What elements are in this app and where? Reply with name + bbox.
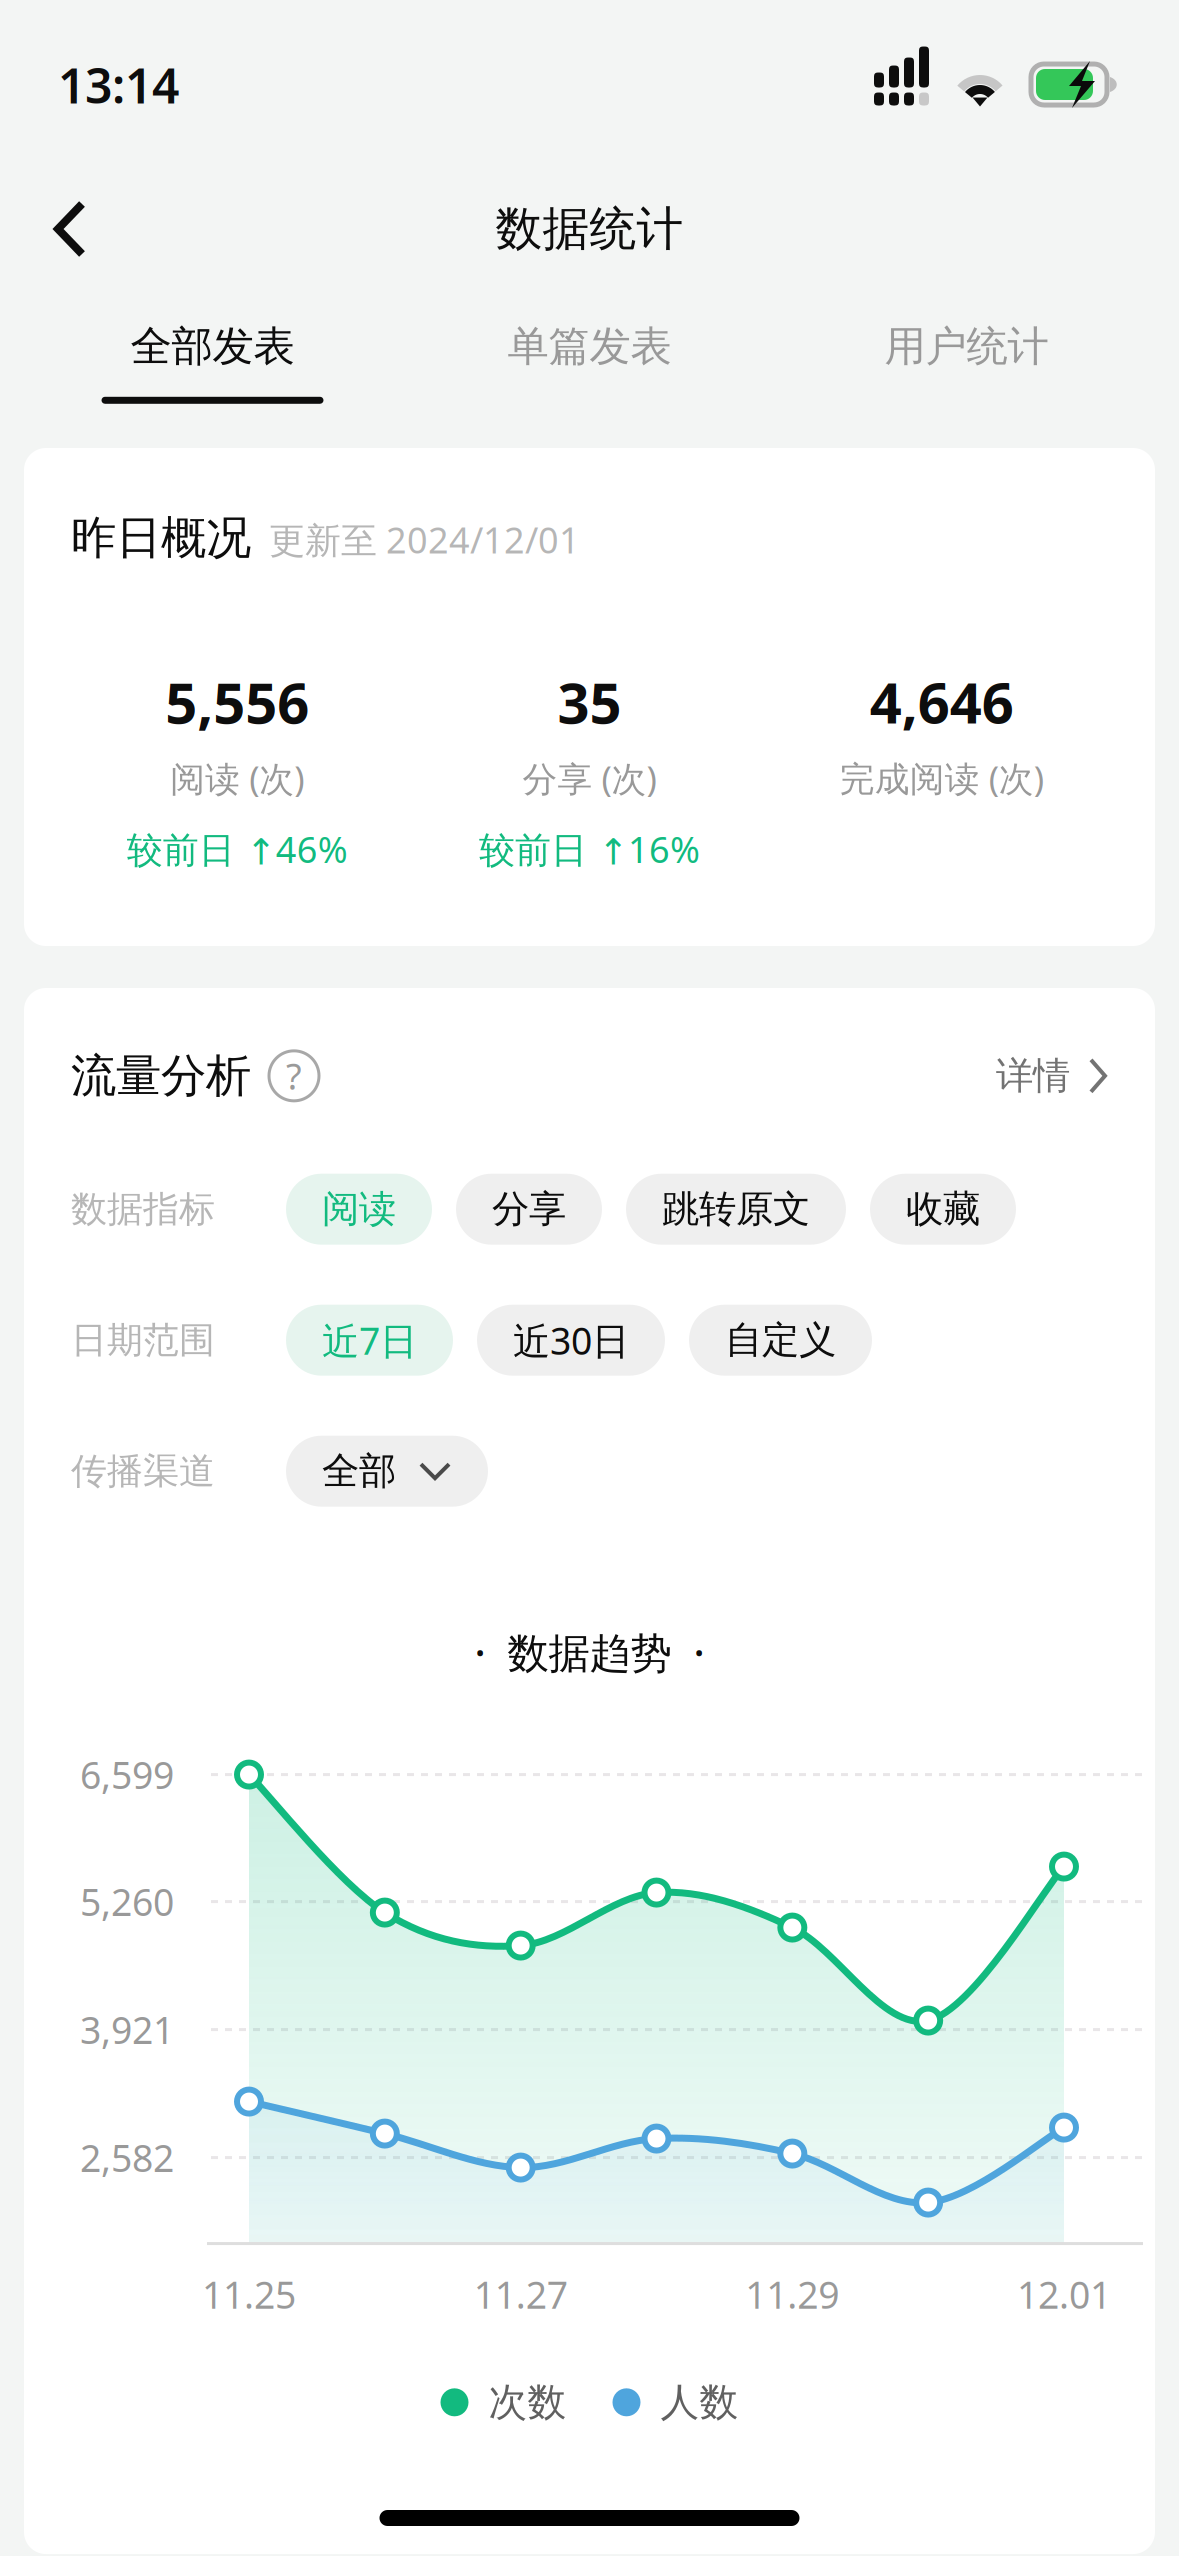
button[interactable]: 分享 xyxy=(456,1174,602,1245)
button[interactable]: 详情 xyxy=(996,1053,1108,1099)
staticText: 流量分析 xyxy=(71,1048,251,1104)
staticText: 完成阅读 (次) xyxy=(840,755,1044,801)
button[interactable]: 收藏 xyxy=(870,1174,1016,1245)
staticText: 数据指标 xyxy=(71,1187,215,1231)
staticText: 4,646 xyxy=(870,665,1014,739)
staticText: 分享 xyxy=(492,1186,566,1232)
staticText: 近7日 xyxy=(322,1315,417,1365)
button[interactable]: 全部 xyxy=(286,1436,488,1507)
staticText: 昨日概况 xyxy=(71,510,251,566)
staticText: 次数 xyxy=(488,2379,566,2426)
staticText: 分享 (次) xyxy=(522,755,656,801)
staticText: 用户统计 xyxy=(884,321,1048,372)
staticText: 6,599 xyxy=(80,1750,174,1799)
staticText: 阅读 xyxy=(322,1186,396,1232)
staticText: 全部发表 xyxy=(130,321,294,372)
staticText: ? xyxy=(286,1052,302,1100)
staticText: 2,582 xyxy=(80,2133,174,2182)
button[interactable]: 近7日 xyxy=(286,1305,453,1376)
staticText: 日期范围 xyxy=(71,1318,215,1362)
staticText: 近30日 xyxy=(513,1315,629,1365)
button[interactable]: 跳转原文 xyxy=(626,1174,846,1245)
staticText: 较前日 ↑16% xyxy=(479,825,700,873)
staticText: 传播渠道 xyxy=(71,1449,215,1493)
staticText: 数据统计 xyxy=(495,200,683,258)
staticText: · 数据趋势 · xyxy=(474,1625,704,1680)
button[interactable]: 自定义 xyxy=(689,1305,872,1376)
staticText: 单篇发表 xyxy=(507,321,671,372)
staticText: 35 xyxy=(557,665,621,739)
staticText: 详情 xyxy=(996,1053,1070,1099)
staticText: 全部 xyxy=(322,1448,396,1494)
staticText: 自定义 xyxy=(725,1317,836,1363)
button[interactable]: 阅读 xyxy=(286,1174,432,1245)
staticText: 3,921 xyxy=(80,2005,174,2054)
button[interactable]: 单篇发表 xyxy=(401,288,778,448)
staticText: 较前日 ↑46% xyxy=(127,825,348,873)
staticText: 收藏 xyxy=(906,1186,980,1232)
staticText: 阅读 (次) xyxy=(170,755,304,801)
button[interactable]: 全部发表 xyxy=(24,288,401,448)
staticText: 12.01 xyxy=(1017,2270,1111,2319)
staticText: 更新至 2024/12/01 xyxy=(269,516,580,563)
button[interactable]: Back xyxy=(22,174,118,284)
staticText: 人数 xyxy=(660,2379,738,2426)
staticText: 13:14 xyxy=(58,53,179,117)
button[interactable]: 用户统计 xyxy=(778,288,1155,448)
staticText: 11.27 xyxy=(474,2270,568,2319)
staticText: 5,556 xyxy=(165,665,309,739)
button[interactable]: 近30日 xyxy=(477,1305,665,1376)
staticText: 跳转原文 xyxy=(662,1186,810,1232)
staticText: 11.25 xyxy=(202,2270,296,2319)
staticText: 11.29 xyxy=(745,2270,839,2319)
staticText: 5,260 xyxy=(80,1877,174,1926)
